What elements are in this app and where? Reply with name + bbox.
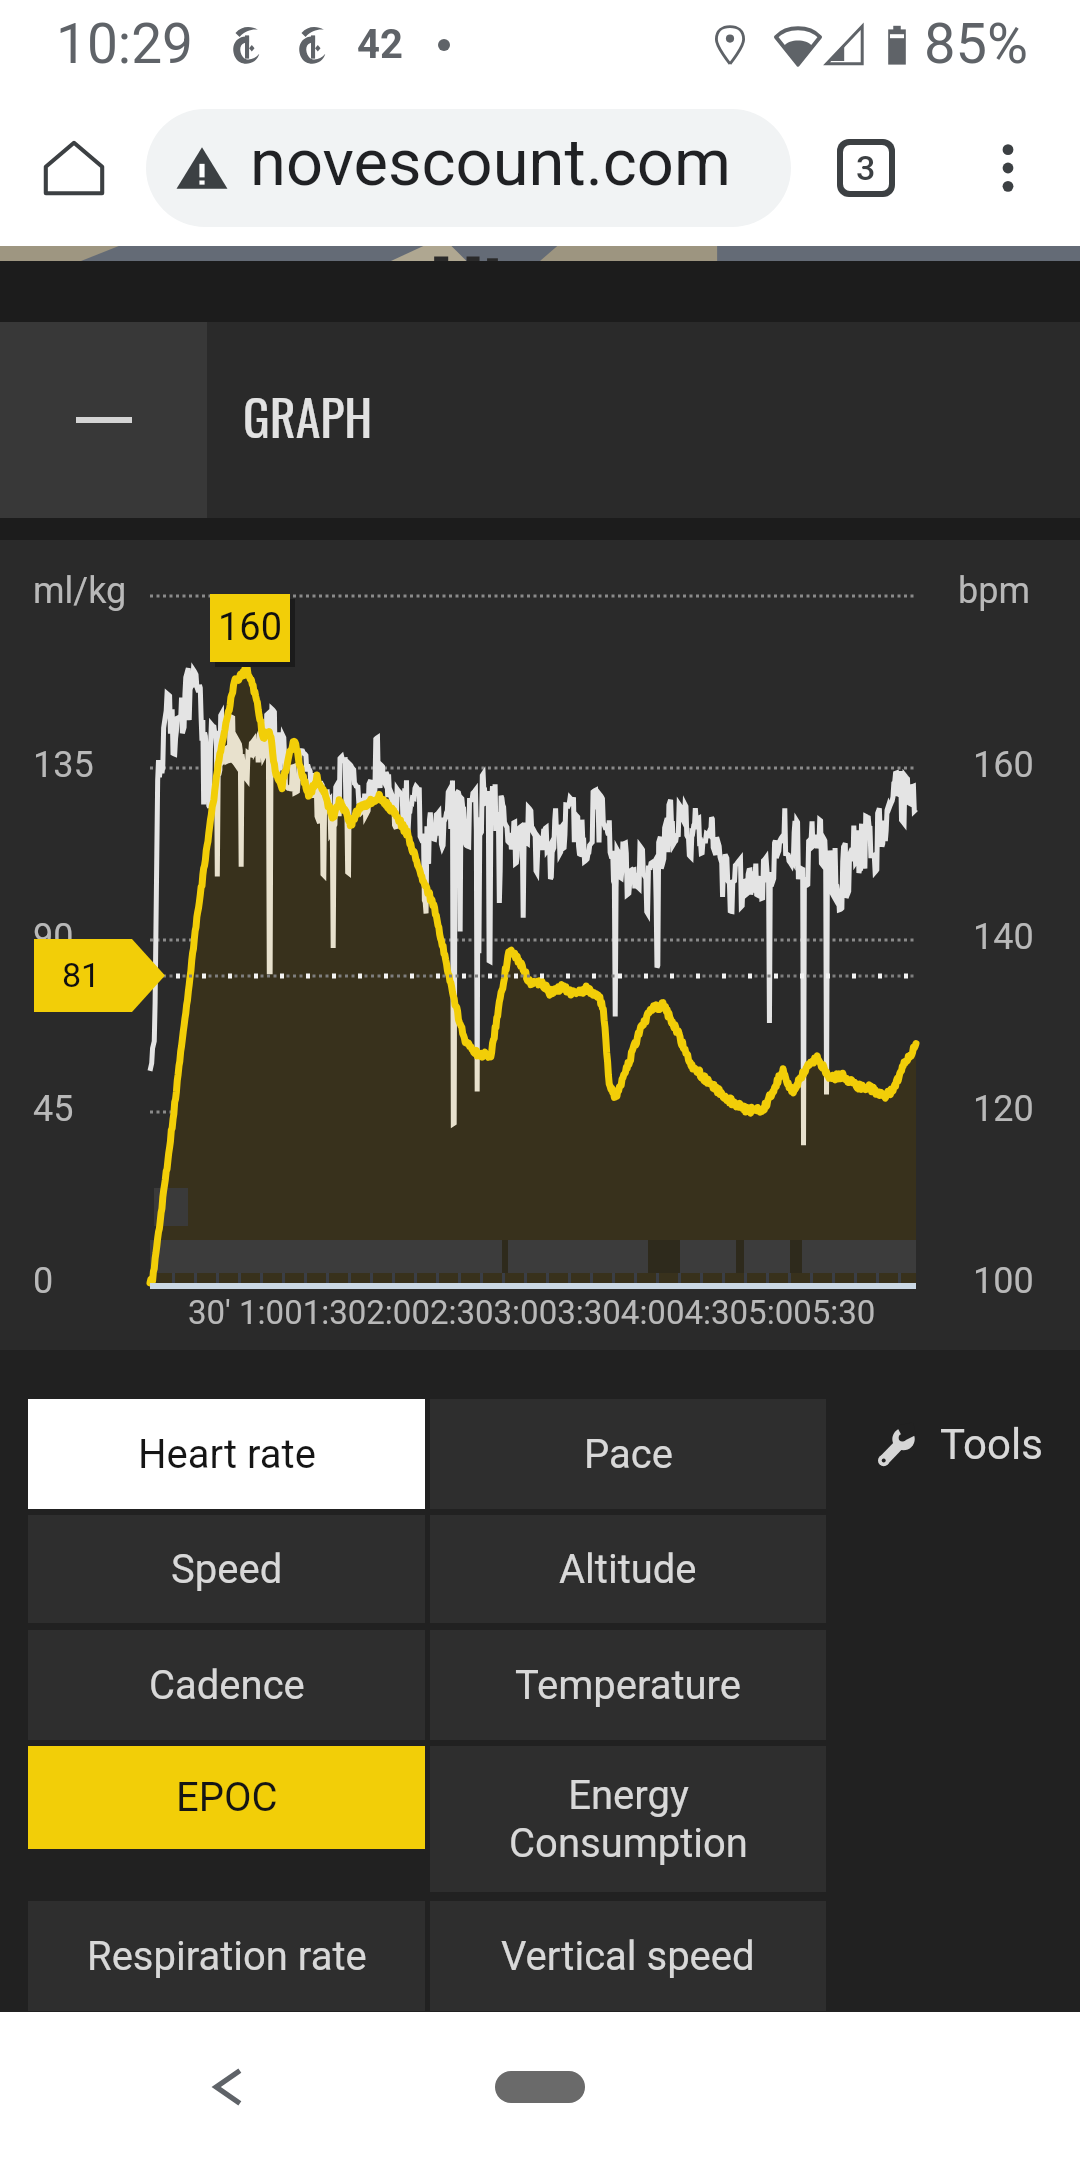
button[interactable]: EPOC — [28, 1746, 425, 1849]
button[interactable]: Minimize — [0, 322, 207, 518]
staticText: 135 — [33, 744, 94, 786]
staticText: 42 — [357, 21, 403, 68]
staticText: EPOC — [176, 1774, 278, 1821]
staticText: 81 — [62, 955, 101, 995]
staticText: 120 — [973, 1088, 1034, 1130]
button[interactable]: Home — [22, 116, 126, 220]
staticText: 100 — [973, 1260, 1034, 1302]
button[interactable]: Pace — [430, 1399, 826, 1509]
staticText: 10:29 — [56, 12, 193, 76]
staticText: Tools — [940, 1420, 1043, 1469]
staticText: 3 — [856, 148, 876, 188]
staticText: Vertical speed — [501, 1933, 755, 1980]
button[interactable]: Speed — [28, 1515, 425, 1623]
button[interactable]: Back — [176, 2036, 276, 2136]
button[interactable]: Home gesture — [495, 2071, 585, 2103]
staticText: Altitude — [559, 1546, 697, 1593]
staticText: 160 — [973, 744, 1034, 786]
staticText: Speed — [171, 1546, 283, 1593]
button[interactable]: Temperature — [430, 1630, 826, 1740]
button[interactable]: More options — [956, 116, 1060, 220]
button[interactable]: Cadence — [28, 1630, 425, 1740]
staticText: Heart rate — [138, 1431, 316, 1478]
staticText: 85% — [924, 11, 1028, 77]
staticText: 90 — [33, 916, 74, 958]
button[interactable]: novescount.com — [146, 109, 791, 227]
staticText: Energy Consumption — [509, 1772, 748, 1867]
button[interactable]: GRAPH — [207, 322, 1080, 518]
staticText: 160 — [218, 605, 283, 650]
button[interactable]: Respiration rate — [28, 1901, 425, 2011]
staticText: 45 — [33, 1088, 74, 1130]
staticText: 140 — [973, 916, 1034, 958]
staticText: 0 — [33, 1260, 54, 1302]
staticText: Temperature — [515, 1662, 741, 1709]
staticText: Pace — [584, 1431, 673, 1478]
button[interactable]: Tabs — [814, 116, 918, 220]
button[interactable]: Vertical speed — [430, 1901, 826, 2011]
staticText: 30' 1:001:302:002:303:003:304:004:305:00… — [188, 1293, 876, 1332]
staticText: GRAPH — [243, 378, 373, 452]
button[interactable]: Energy Consumption — [430, 1746, 826, 1892]
staticText: bpm — [958, 570, 1030, 612]
staticText: Respiration rate — [87, 1933, 367, 1980]
button[interactable]: Altitude — [430, 1515, 826, 1623]
button[interactable]: Tools — [878, 1420, 1043, 1469]
staticText: novescount.com — [250, 125, 731, 201]
staticText: Cadence — [149, 1662, 305, 1709]
staticText: ml/kg — [33, 570, 127, 612]
button[interactable]: Heart rate — [28, 1399, 425, 1509]
